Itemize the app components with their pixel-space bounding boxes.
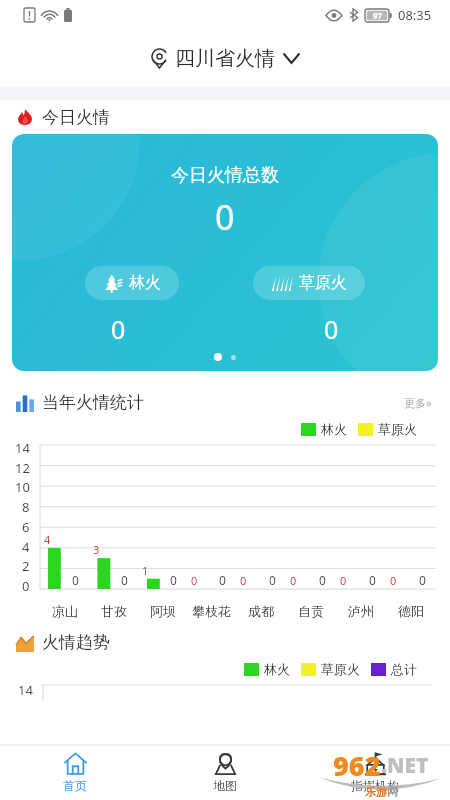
staticText: 成都 [248, 603, 274, 619]
staticText: 0 [121, 572, 128, 588]
button[interactable]: 指挥机构 [300, 745, 450, 800]
staticText: 4 [22, 538, 30, 556]
staticText: 网 [387, 785, 398, 799]
staticText: 0 [22, 577, 30, 595]
staticText: 0 [219, 572, 226, 588]
staticText: 甘孜 [101, 603, 127, 619]
staticText: 08:35 [398, 6, 432, 24]
other: 指挥机构 [364, 752, 387, 775]
other: 地图 [214, 752, 237, 775]
staticText: 泸州 [348, 603, 374, 619]
staticText: 0 [369, 572, 376, 588]
staticText: 0 [324, 312, 339, 346]
staticText: 凉山 [52, 603, 78, 619]
staticText: 草原火 [378, 421, 417, 437]
staticText: 首页 [63, 778, 87, 793]
staticText: 97 [373, 10, 383, 21]
button[interactable]: 更多» [400, 391, 436, 414]
staticText: 0 [111, 312, 126, 346]
staticText: 林火 [321, 421, 347, 437]
staticText: 0 [340, 573, 347, 588]
staticText: 今日火情 [42, 107, 110, 128]
staticText: 0 [170, 572, 177, 588]
staticText: 0 [240, 573, 247, 588]
other: 首页 [64, 752, 87, 775]
staticText: 地图 [213, 778, 237, 793]
staticText: 指挥机构 [351, 778, 399, 793]
staticText: 12 [15, 459, 30, 477]
staticText: 962 [333, 747, 381, 784]
staticText: 林火 [264, 661, 290, 677]
staticText: 4 [44, 532, 51, 547]
staticText: 0 [290, 573, 297, 588]
button[interactable]: 林火 [85, 266, 179, 300]
staticText: 总计 [391, 661, 417, 677]
staticText: 1 [142, 563, 149, 578]
staticText: 当年火情统计 [42, 392, 144, 413]
button[interactable]: 草原火 [253, 266, 365, 300]
staticText: 10 [15, 478, 30, 496]
staticText: 林火 [129, 273, 161, 293]
staticText: 今日火情总数 [171, 164, 279, 187]
staticText: 阿坝 [150, 603, 176, 619]
staticText: 2 [22, 557, 30, 575]
staticText: 0 [215, 194, 235, 240]
staticText: 自贡 [298, 603, 324, 619]
staticText: 14 [15, 439, 30, 457]
staticText: 乐游 [365, 785, 387, 799]
staticText: 更多» [404, 395, 432, 410]
staticText: 14 [18, 681, 33, 699]
staticText: 0 [419, 572, 426, 588]
staticText: 四川省火情 [175, 46, 275, 71]
staticText: 草原火 [299, 273, 347, 293]
staticText: 0 [269, 572, 276, 588]
staticText: 草原火 [321, 661, 360, 677]
staticText: 0 [319, 572, 326, 588]
staticText: 8 [22, 498, 30, 516]
staticText: 3 [93, 542, 100, 557]
staticText: 火情趋势 [42, 632, 110, 653]
staticText: .NET [381, 751, 429, 780]
staticText: 攀枝花 [192, 603, 231, 619]
button[interactable]: 首页 [0, 745, 150, 800]
staticText: 0 [191, 573, 198, 588]
staticText: 0 [72, 572, 79, 588]
staticText: 0 [390, 573, 397, 588]
button[interactable]: 今日火情总数 [12, 134, 438, 371]
staticText: 6 [22, 518, 30, 536]
button[interactable]: 地图 [150, 745, 300, 800]
button[interactable]: 四川省火情 [0, 30, 450, 86]
staticText: 德阳 [398, 603, 424, 619]
